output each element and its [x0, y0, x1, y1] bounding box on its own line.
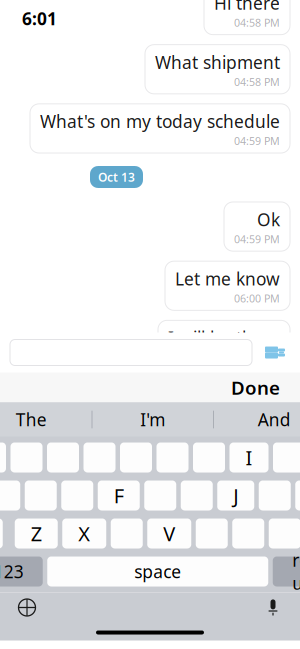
staticText: 04:59 PM	[234, 134, 280, 148]
button[interactable]: space	[47, 556, 268, 586]
button[interactable]: And	[214, 402, 300, 436]
button[interactable]: G	[144, 480, 176, 510]
button[interactable]: K	[259, 480, 291, 510]
staticText: J	[233, 482, 238, 509]
button[interactable]: V	[147, 518, 191, 548]
staticText: F	[114, 482, 124, 509]
button[interactable]: W	[10, 442, 42, 472]
staticText: return	[292, 548, 300, 594]
staticText: X	[78, 520, 90, 547]
button[interactable]: J	[217, 480, 254, 510]
button[interactable]: Hi there	[204, 0, 290, 35]
button[interactable]: C	[111, 518, 143, 548]
button[interactable]: I will be there	[158, 320, 290, 369]
button[interactable]: What shipment	[145, 45, 290, 94]
button[interactable]: I	[229, 442, 268, 472]
staticText: 04:58 PM	[234, 15, 280, 30]
staticText: What shipment	[155, 51, 280, 74]
button[interactable]: What's on my today schedule	[30, 104, 290, 153]
button[interactable]: I'm	[92, 402, 213, 436]
staticText: I'm	[140, 408, 165, 431]
button[interactable]: S	[25, 480, 57, 510]
button[interactable]: Shift	[0, 518, 3, 548]
button[interactable]: N	[232, 518, 264, 548]
staticText: Hi there	[214, 0, 280, 14]
button[interactable]: L	[295, 480, 300, 510]
staticText: Done	[231, 375, 280, 400]
staticText: V	[163, 520, 175, 547]
button[interactable]: The	[0, 402, 91, 436]
button[interactable]: O	[273, 442, 300, 472]
button[interactable]: R	[83, 442, 115, 472]
staticText: 6:01	[22, 7, 57, 30]
staticText: 123	[0, 560, 24, 583]
button[interactable]: H	[181, 480, 213, 510]
button[interactable]: D	[61, 480, 93, 510]
staticText: What's on my today schedule	[40, 110, 280, 133]
staticText: Oct 13	[98, 169, 135, 185]
button[interactable]: Let me know	[165, 261, 290, 310]
button[interactable]: Q	[0, 442, 6, 472]
staticText: I	[245, 444, 252, 471]
button[interactable]: Dictation	[258, 594, 288, 620]
button[interactable]: Done	[221, 369, 290, 406]
button[interactable]: 123	[0, 556, 43, 586]
staticText: 04:59 PM	[234, 232, 280, 246]
staticText: 04:58 PM	[234, 75, 280, 89]
button[interactable]: F	[98, 480, 140, 510]
staticText: Let me know	[175, 267, 280, 290]
button[interactable]: T	[120, 442, 152, 472]
staticText: I will be there	[168, 326, 280, 349]
staticText: 06:00 PM	[234, 291, 280, 305]
button[interactable]: B	[196, 518, 228, 548]
button[interactable]: A	[0, 480, 20, 510]
staticText: The	[16, 408, 47, 431]
staticText: And	[258, 408, 291, 431]
staticText: 06:00 PM	[234, 350, 280, 365]
button[interactable]: Y	[156, 442, 188, 472]
staticText: Ok	[257, 208, 280, 231]
button[interactable]: X	[62, 518, 106, 548]
button[interactable]: return	[273, 556, 300, 586]
button[interactable]: Ok	[224, 202, 290, 251]
button[interactable]: U	[193, 442, 225, 472]
button[interactable]: E	[47, 442, 79, 472]
button[interactable]: Z	[15, 518, 58, 548]
staticText: Z	[31, 520, 42, 547]
button[interactable]: M	[269, 518, 300, 548]
staticText: space	[134, 560, 181, 583]
button[interactable]: Send	[260, 339, 290, 365]
button[interactable]: Change keyboard	[12, 594, 42, 620]
